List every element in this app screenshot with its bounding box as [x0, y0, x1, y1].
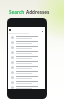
staticText: Addresses: [26, 9, 50, 15]
staticText: Search: [9, 9, 26, 15]
button[interactable]: [8, 50, 45, 55]
button[interactable]: [8, 80, 45, 85]
button[interactable]: [8, 35, 45, 40]
button[interactable]: [8, 75, 45, 80]
button[interactable]: [8, 85, 45, 89]
button[interactable]: [8, 55, 45, 60]
button[interactable]: [8, 60, 45, 65]
button[interactable]: Search: [8, 27, 45, 35]
button[interactable]: [8, 45, 45, 50]
button[interactable]: [8, 40, 45, 45]
button[interactable]: [8, 65, 45, 70]
button[interactable]: [8, 70, 45, 75]
